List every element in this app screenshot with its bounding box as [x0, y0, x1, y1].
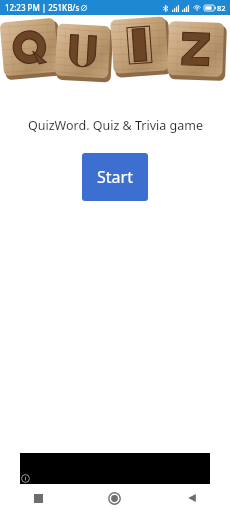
button[interactable]: Back	[153, 484, 230, 512]
button[interactable]: Recents	[0, 484, 76, 512]
button[interactable]: Ad info	[20, 453, 210, 484]
button[interactable]: Home	[76, 484, 153, 512]
staticText: 12:23 PM | 251KB/s	[5, 2, 80, 13]
staticText: QuizWord. Quiz & Trivia game	[28, 117, 203, 134]
other: Ad info	[21, 474, 30, 483]
button[interactable]: Start	[82, 153, 148, 201]
staticText: 82	[217, 3, 226, 13]
staticText: Start	[97, 166, 133, 188]
